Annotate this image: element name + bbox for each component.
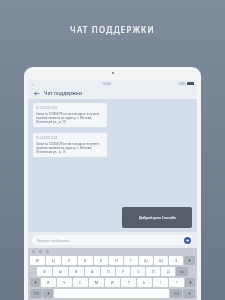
staticText: 100% — [178, 82, 186, 86]
staticText: Р — [122, 269, 125, 274]
staticText: 10.12.2018 13:35 — [36, 106, 58, 110]
button[interactable]: Д — [161, 267, 175, 276]
staticText: Я — [47, 280, 50, 285]
button[interactable] — [184, 256, 195, 265]
staticText: .?123 — [33, 292, 40, 296]
staticText: И — [111, 280, 114, 285]
button[interactable]: .?123 — [170, 289, 182, 298]
staticText: Чат поддержки — [44, 90, 82, 97]
button[interactable]: Клавиша — [183, 289, 195, 298]
staticText: Ц — [52, 258, 55, 263]
button[interactable]: 10.12.2018 13:35 — [33, 103, 107, 127]
button[interactable]: Щ — [154, 256, 168, 265]
button[interactable]: Л — [146, 267, 160, 276]
button[interactable]: Ч — [57, 278, 72, 287]
staticText: В — [75, 269, 78, 274]
staticText: У — [68, 258, 71, 263]
staticText: ЧАТ ПОДДЕРЖКИ — [70, 24, 155, 35]
staticText: Ы — [59, 269, 63, 274]
button[interactable]: ! — [153, 278, 168, 287]
button[interactable]: Вернуть — [38, 249, 43, 254]
staticText: ! — [160, 280, 161, 285]
staticText: Введите сообщение... — [37, 238, 72, 242]
button[interactable]: 10.12.2018 13:35 — [33, 133, 107, 157]
staticText: П — [107, 269, 110, 274]
button[interactable]: К — [78, 256, 93, 265]
button[interactable]: Ц — [46, 256, 61, 265]
button[interactable]: Р — [116, 267, 130, 276]
staticText: Ш — [144, 258, 148, 263]
button[interactable]: Клавиша — [185, 278, 195, 287]
button[interactable]: Отправить — [184, 237, 191, 244]
button[interactable]: Й — [30, 256, 45, 265]
button[interactable]: В — [69, 267, 84, 276]
button[interactable]: Ы — [53, 267, 68, 276]
staticText: Заказ №12345678 готов к выдаче в пункте … — [36, 112, 104, 124]
staticText: .?123 — [173, 292, 180, 296]
staticText: Ф — [43, 269, 46, 274]
button[interactable]: Клавиша — [30, 278, 40, 287]
button[interactable]: abc — [176, 267, 188, 276]
staticText: С — [79, 280, 82, 285]
staticText: 13:40 — [102, 81, 111, 86]
staticText: Щ — [159, 258, 163, 263]
staticText: Ь — [143, 280, 146, 285]
button[interactable]: Назад — [32, 89, 41, 98]
button[interactable]: Ш — [139, 256, 153, 265]
button[interactable]: У — [62, 256, 77, 265]
button[interactable]: Н — [109, 256, 123, 265]
staticText: Й — [36, 258, 39, 263]
staticText: З — [175, 258, 178, 263]
staticText: abc — [180, 270, 185, 274]
button[interactable]: Е — [94, 256, 108, 265]
button[interactable]: А — [85, 267, 100, 276]
button[interactable]: Клавиша — [43, 289, 53, 298]
staticText: Н — [115, 258, 118, 263]
button[interactable]: П — [101, 267, 115, 276]
button[interactable]: Ф — [37, 267, 52, 276]
button[interactable]: ? — [169, 278, 184, 287]
staticText: Д — [167, 269, 170, 274]
button[interactable]: З — [169, 256, 183, 265]
staticText: К — [84, 258, 87, 263]
staticText: Г — [130, 258, 132, 263]
staticText: ? — [176, 280, 178, 285]
button[interactable]: Я — [41, 278, 56, 287]
staticText: А — [91, 269, 94, 274]
button[interactable]: С — [73, 278, 88, 287]
staticText: О — [137, 269, 140, 274]
staticText: Ч — [63, 280, 66, 285]
button[interactable]: М — [89, 278, 104, 287]
button[interactable]: И — [105, 278, 120, 287]
button[interactable]: О — [131, 267, 145, 276]
button[interactable]: Ь — [137, 278, 152, 287]
staticText: Л — [152, 269, 155, 274]
staticText: М — [95, 280, 99, 285]
staticText: 10.12.2018 13:35 — [36, 136, 58, 140]
button[interactable]: Отменить — [31, 249, 36, 254]
staticText: Е — [100, 258, 102, 263]
staticText: Т — [128, 280, 130, 285]
button[interactable]: Добрый день Спасибо — [122, 207, 192, 228]
button[interactable]: .?123 — [30, 289, 42, 298]
button[interactable]: Введите сообщение... — [32, 235, 193, 245]
staticText: Добрый день Спасибо — [139, 215, 176, 220]
button[interactable]: Т — [121, 278, 136, 287]
staticText: Заказ №12345678 готов к выдаче в пункте … — [36, 142, 104, 154]
button[interactable]: Г — [124, 256, 138, 265]
button[interactable]: Вставить — [45, 249, 50, 254]
